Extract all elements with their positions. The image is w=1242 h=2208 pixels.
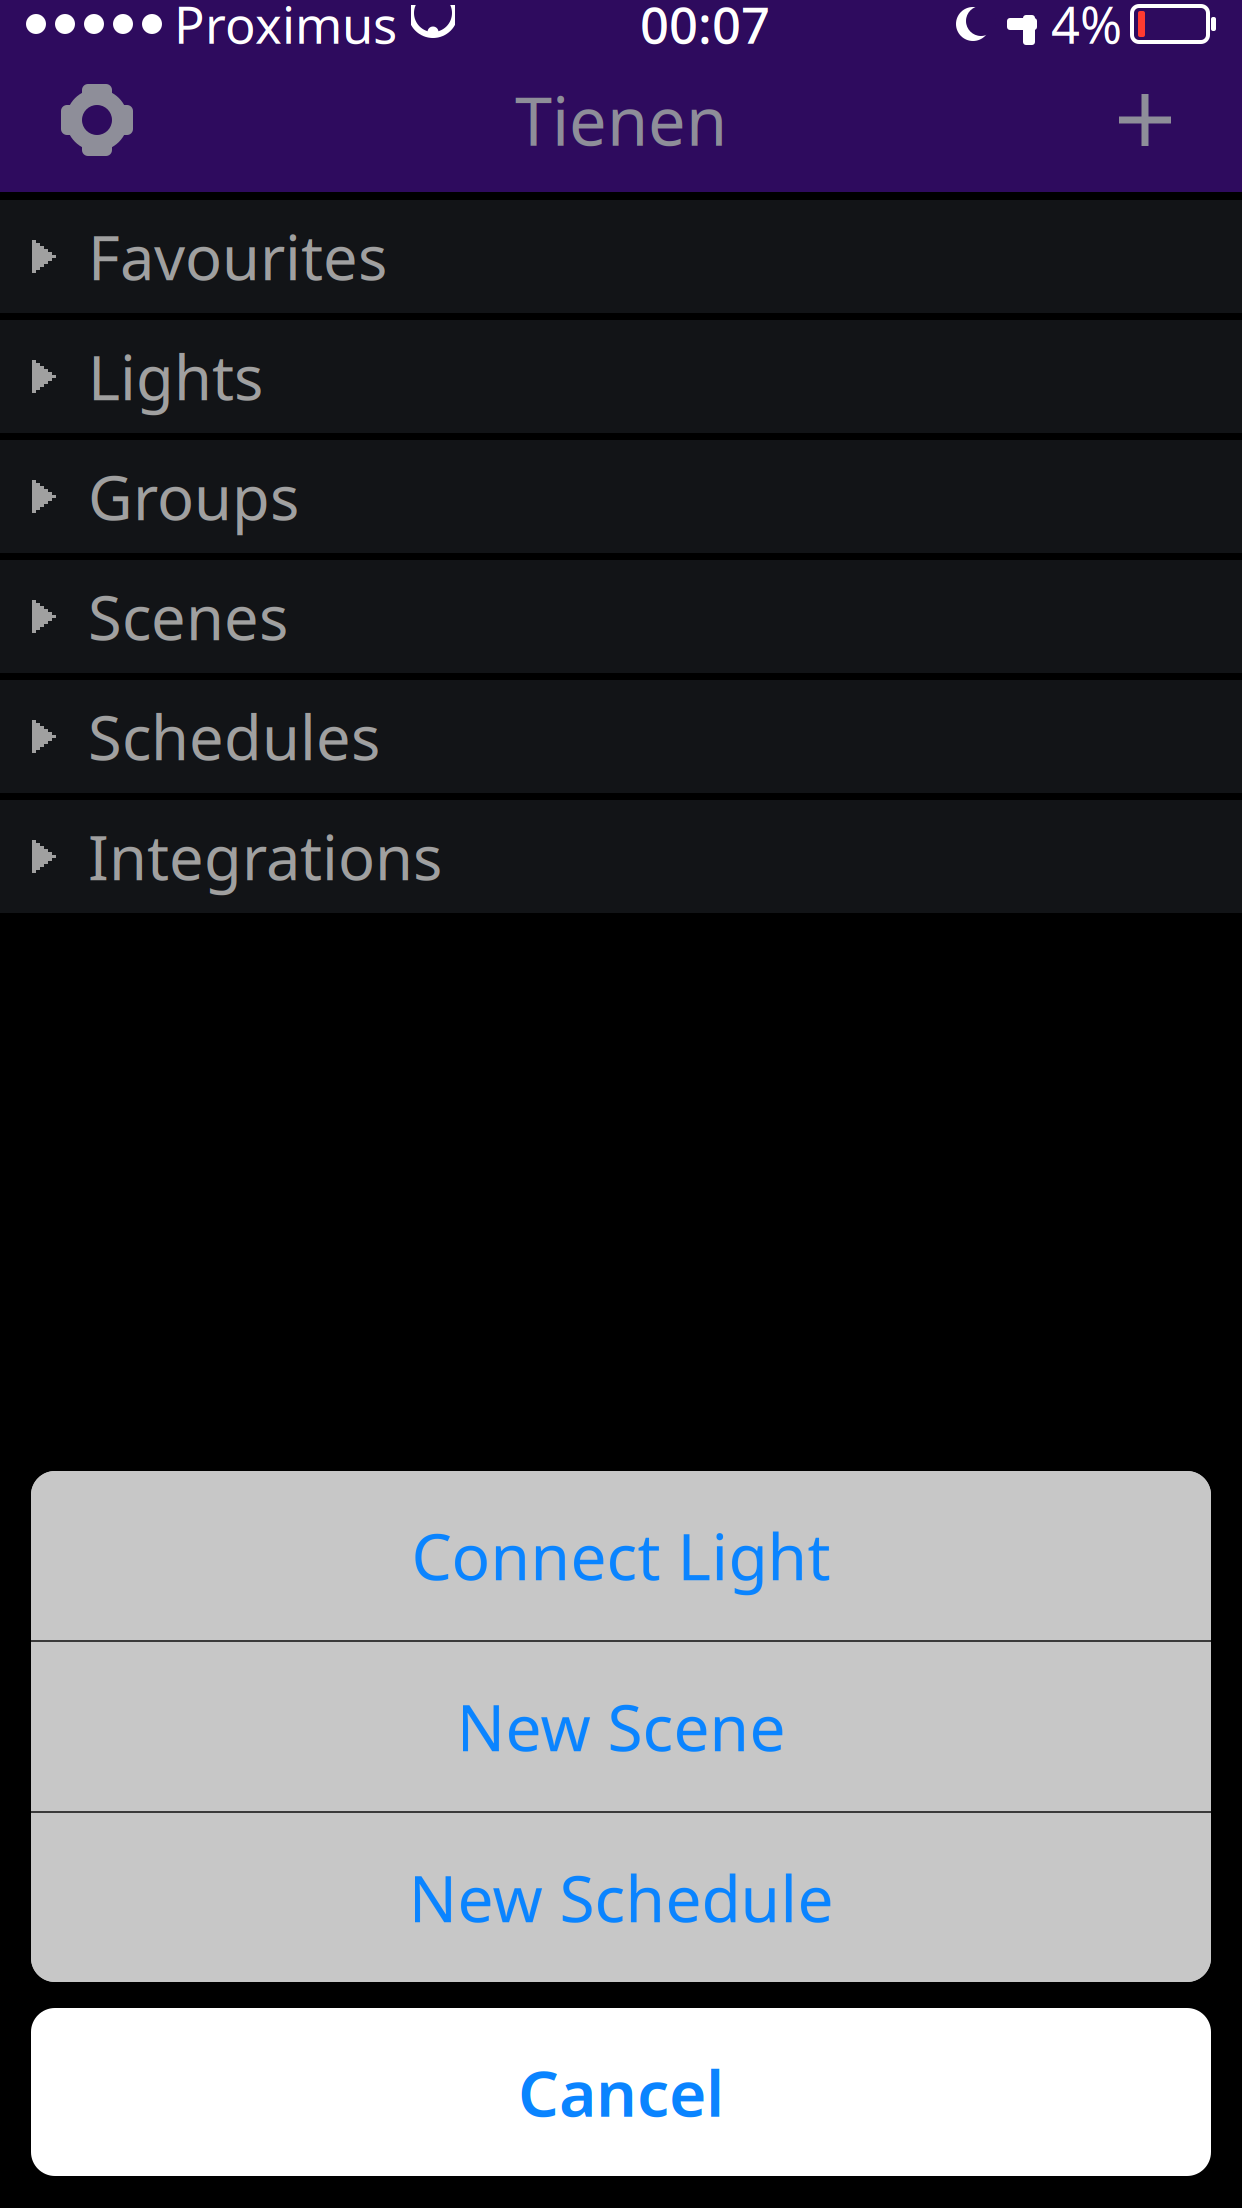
staticText: 4% bbox=[1051, 0, 1122, 58]
staticText: Lights bbox=[88, 336, 263, 417]
staticText: Cancel bbox=[518, 2049, 724, 2134]
staticText: Schedules bbox=[88, 696, 380, 777]
button[interactable]: Groups bbox=[0, 440, 1242, 553]
staticText: 00:07 bbox=[640, 0, 770, 58]
button[interactable]: Favourites bbox=[0, 200, 1242, 313]
staticText: Groups bbox=[88, 456, 299, 537]
button[interactable]: Connect Light bbox=[31, 1471, 1211, 1640]
staticText: Scenes bbox=[88, 576, 288, 657]
button[interactable]: Lights bbox=[0, 320, 1242, 433]
staticText: Favourites bbox=[88, 216, 387, 297]
button[interactable]: Schedules bbox=[0, 680, 1242, 793]
staticText: New Schedule bbox=[408, 1855, 833, 1940]
button[interactable]: Add bbox=[1080, 48, 1210, 192]
button[interactable]: Scenes bbox=[0, 560, 1242, 673]
button[interactable]: New Scene bbox=[31, 1642, 1211, 1811]
button[interactable]: Cancel bbox=[31, 2008, 1211, 2176]
staticText: Tienen bbox=[515, 76, 727, 164]
staticText: Proximus bbox=[174, 0, 397, 58]
staticText: New Scene bbox=[456, 1684, 785, 1769]
staticText: Integrations bbox=[88, 816, 442, 897]
button[interactable]: Integrations bbox=[0, 800, 1242, 913]
button[interactable]: New Schedule bbox=[31, 1813, 1211, 1982]
button[interactable]: Settings bbox=[32, 48, 162, 192]
staticText: Connect Light bbox=[411, 1513, 830, 1598]
